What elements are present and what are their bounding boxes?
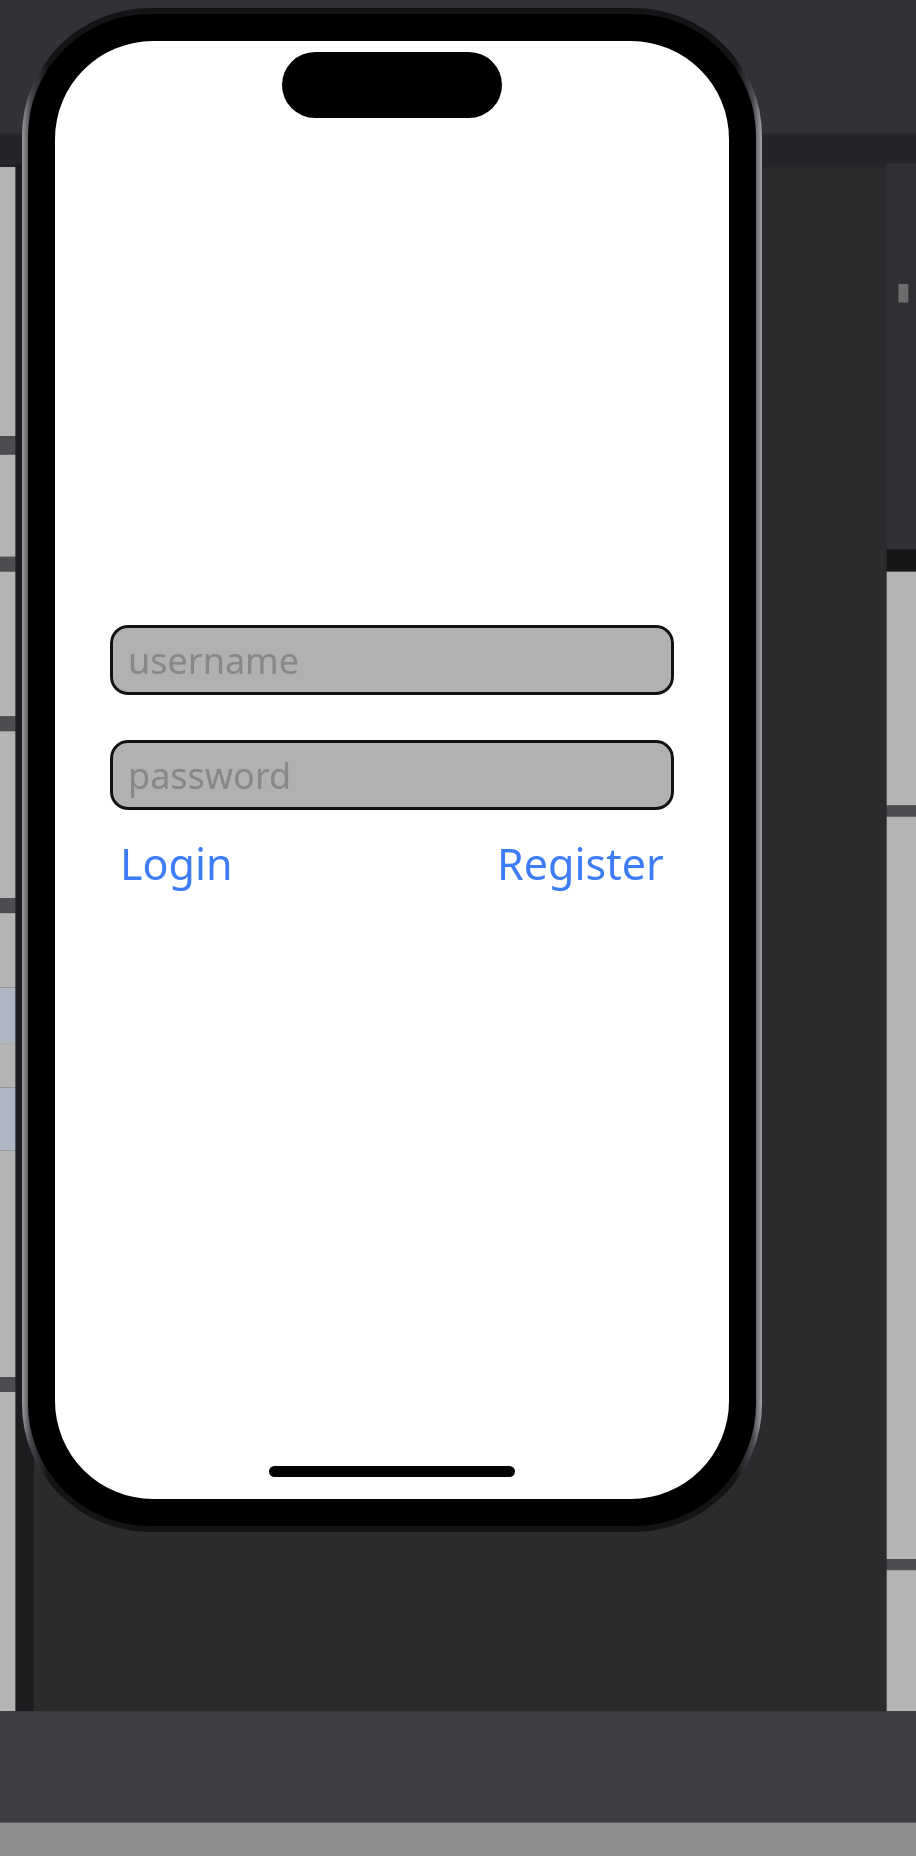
button[interactable]: username — [110, 625, 674, 695]
button[interactable]: Register — [497, 834, 664, 893]
button[interactable]: Login — [120, 834, 233, 893]
staticText: username — [128, 636, 300, 685]
staticText: password — [128, 751, 292, 800]
button[interactable]: password — [110, 740, 674, 810]
